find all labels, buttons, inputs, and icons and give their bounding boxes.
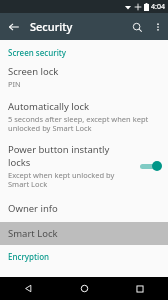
button[interactable]: Power button instantly locks [0,141,168,191]
button[interactable]: Power button instantly locks toggle [138,159,162,173]
button[interactable]: Owner info [0,197,168,220]
staticText: Except when kept unlocked by Smart Lock [8,170,134,189]
button[interactable]: Back [0,277,56,300]
button[interactable]: Home [56,277,112,300]
staticText: 5 seconds after sleep, except when kept … [8,114,160,133]
button[interactable]: More options [148,17,168,37]
button[interactable]: Recent apps [112,277,168,300]
staticText: Screen lock [8,65,59,78]
staticText: Encryption [8,251,50,262]
button[interactable]: Automatically lock [0,98,168,135]
button[interactable]: Encryption [0,249,168,264]
staticText: Owner info [8,202,58,215]
staticText: Power button instantly locks [8,143,134,169]
staticText: Security [30,19,73,34]
button[interactable]: Screen security [0,45,168,60]
staticText: 4:04 [151,2,165,12]
button[interactable]: Smart Lock [0,222,168,245]
button[interactable]: Search [126,16,148,38]
staticText: Automatically lock [8,100,90,113]
staticText: Screen security [8,47,67,58]
staticText: PIN [8,79,21,89]
button[interactable]: Screen lock [0,63,168,91]
staticText: Smart Lock [8,227,58,240]
button[interactable]: Back [3,16,25,38]
